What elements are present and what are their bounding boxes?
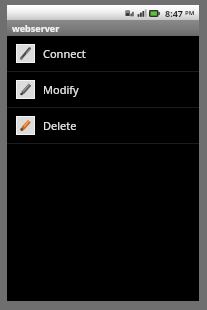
staticText: Modify <box>43 82 79 97</box>
staticText: 8:47 <box>165 7 183 19</box>
staticText: webserver <box>12 22 60 34</box>
staticText: Delete <box>43 118 77 133</box>
staticText: PM <box>185 9 195 17</box>
staticText: Connect <box>43 46 86 61</box>
button[interactable]: Modify <box>7 72 199 107</box>
button[interactable]: Delete <box>7 108 199 143</box>
button[interactable]: Connect <box>7 36 199 71</box>
